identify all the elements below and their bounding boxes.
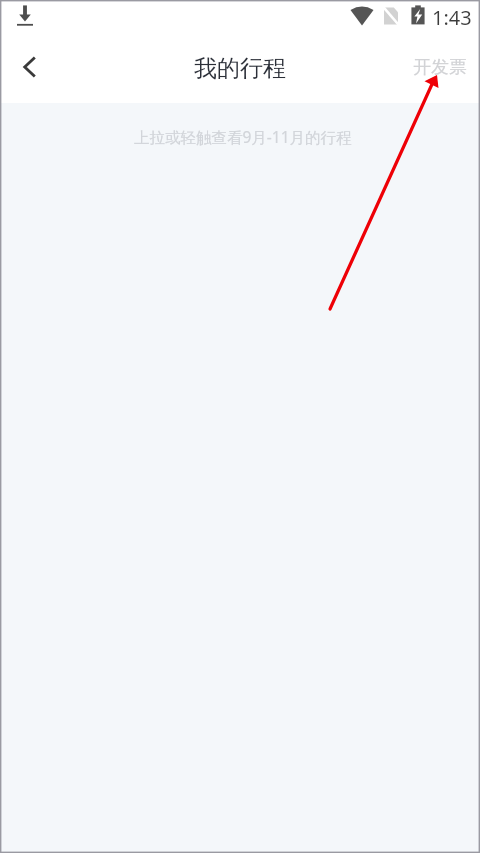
staticText: 我的行程 xyxy=(194,54,286,83)
button[interactable]: Back xyxy=(2,39,58,95)
staticText: 上拉或轻触查看9月-11月的行程 xyxy=(134,126,352,147)
button[interactable]: 开发票 xyxy=(403,46,480,89)
staticText: 开发票 xyxy=(413,56,467,79)
button[interactable]: 上拉或轻触查看9月-11月的行程 xyxy=(0,103,480,165)
staticText: 1:43 xyxy=(432,4,472,31)
